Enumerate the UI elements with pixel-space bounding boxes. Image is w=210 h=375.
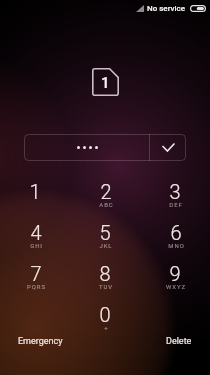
button[interactable]: 4 [0,221,70,262]
staticText: JKL [99,242,113,249]
staticText: 1 [29,180,41,203]
staticText: 3 [169,180,181,203]
button[interactable]: Delete [140,331,210,351]
button[interactable]: 1 [0,180,70,221]
staticText: 4 [30,221,42,244]
button[interactable]: 0 [70,303,140,344]
button[interactable]: 6 [140,221,210,262]
button[interactable]: Emergency [0,331,84,351]
staticText: 1 [101,74,110,92]
staticText: 8 [99,262,111,285]
button[interactable]: 7 [0,262,70,303]
staticText: No service [147,4,186,13]
staticText: GHI [30,242,43,249]
button[interactable]: 2 [70,180,140,221]
staticText: WXYZ [166,283,186,290]
button[interactable]: 8 [70,262,140,303]
button[interactable]: 3 [140,180,210,221]
staticText: 2 [100,180,112,203]
button[interactable]: 9 [140,262,210,303]
staticText: TUV [99,283,113,290]
staticText: 5 [99,221,111,244]
button[interactable]: Confirm PIN [150,134,186,161]
staticText: 7 [30,262,42,285]
button[interactable]: PIN entry field [24,134,150,161]
staticText: Emergency [18,336,63,347]
staticText: 6 [170,221,182,244]
staticText: ABC [99,201,114,208]
staticText: MNO [168,242,185,249]
staticText: PQRS [27,283,46,290]
staticText: DEF [169,201,183,208]
staticText: + [104,324,109,331]
staticText: 9 [169,262,181,285]
button[interactable]: 5 [70,221,140,262]
staticText: 0 [99,303,111,326]
staticText: Delete [166,336,192,347]
